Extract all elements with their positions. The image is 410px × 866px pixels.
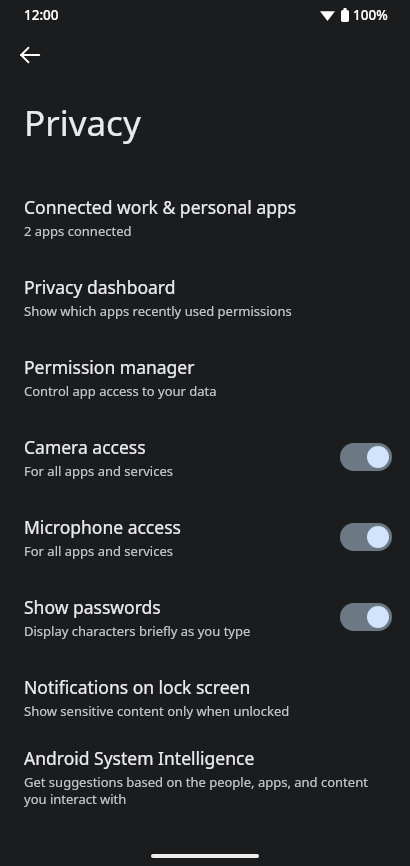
staticText: For all apps and services [24, 462, 174, 480]
button[interactable]: Notifications on lock screen [0, 657, 410, 737]
button[interactable]: Permission manager [0, 337, 410, 417]
staticText: Display characters briefly as you type [24, 622, 251, 640]
staticText: Camera access [24, 435, 146, 459]
staticText: 2 apps connected [24, 222, 132, 240]
staticText: Show sensitive content only when unlocke… [24, 702, 290, 720]
button[interactable]: Privacy dashboard [0, 257, 410, 337]
staticText: Connected work & personal apps [24, 195, 297, 219]
button[interactable]: Toggle [340, 603, 392, 631]
staticText: Privacy [24, 99, 141, 147]
button[interactable]: Back [10, 35, 50, 75]
button[interactable]: Microphone access [0, 497, 410, 577]
button[interactable]: Connected work & personal apps [0, 177, 410, 257]
button[interactable]: Android System Intelligence [0, 737, 410, 817]
staticText: Get suggestions based on the people, app… [24, 773, 392, 808]
staticText: Microphone access [24, 515, 181, 539]
button[interactable]: Toggle [340, 443, 392, 471]
staticText: 100% [353, 6, 388, 24]
staticText: For all apps and services [24, 542, 174, 560]
button[interactable]: Toggle [340, 523, 392, 551]
staticText: Android System Intelligence [24, 746, 255, 770]
staticText: Notifications on lock screen [24, 675, 251, 699]
staticText: Show passwords [24, 595, 161, 619]
staticText: Control app access to your data [24, 382, 217, 400]
staticText: Permission manager [24, 355, 195, 379]
button[interactable]: Show passwords [0, 577, 410, 657]
button[interactable]: Camera access [0, 417, 410, 497]
staticText: Show which apps recently used permission… [24, 302, 292, 320]
staticText: 12:00 [24, 6, 59, 24]
staticText: Privacy dashboard [24, 275, 176, 299]
